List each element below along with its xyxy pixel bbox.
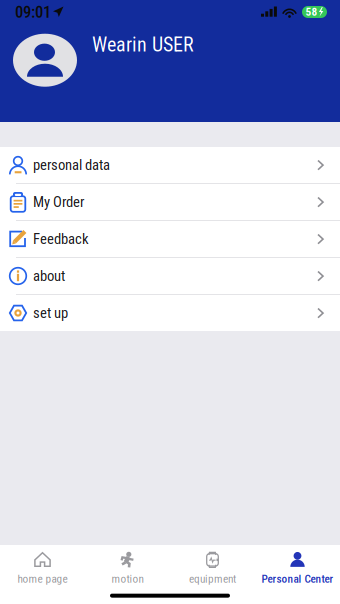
staticText: about	[33, 267, 65, 285]
staticText: 09:01	[15, 2, 51, 22]
staticText: motion	[111, 572, 143, 586]
staticText: set up	[33, 304, 68, 322]
button[interactable]: Feedback	[0, 221, 340, 257]
staticText: Feedback	[33, 230, 89, 248]
button[interactable]: equipment	[170, 544, 255, 586]
button[interactable]: set up	[0, 295, 340, 331]
button[interactable]: about	[0, 258, 340, 294]
button[interactable]: Personal Center	[255, 544, 340, 586]
button[interactable]: personal data	[0, 147, 340, 183]
staticText: My Order	[33, 193, 84, 211]
staticText: home page	[17, 572, 67, 586]
button[interactable]: motion	[85, 544, 170, 586]
staticText: equipment	[189, 572, 236, 586]
staticText: Personal Center	[261, 572, 333, 586]
staticText: 58	[305, 5, 317, 19]
button[interactable]: home page	[0, 544, 85, 586]
button[interactable]: My Order	[0, 184, 340, 220]
staticText: personal data	[33, 156, 110, 174]
staticText: Wearin USER	[92, 33, 194, 56]
